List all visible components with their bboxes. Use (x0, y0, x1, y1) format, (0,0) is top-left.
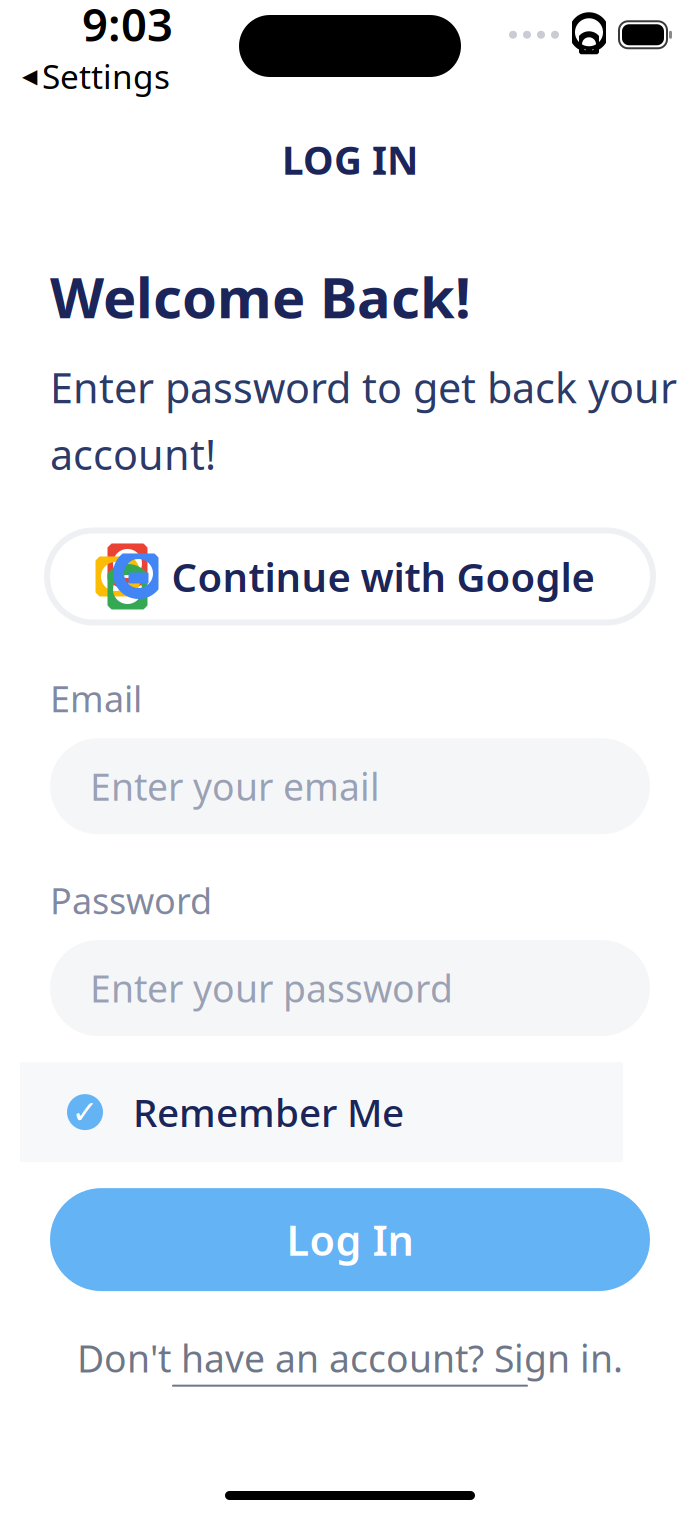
staticText: Settings (42, 54, 170, 98)
staticText: 9:03 (82, 0, 173, 54)
button[interactable]: Enter your email (50, 738, 650, 834)
button[interactable]: Don't have an account? Sign in. (77, 1333, 623, 1387)
staticText: Continue with Google (171, 550, 594, 603)
staticText: ◀ (22, 65, 37, 87)
button[interactable]: ✓ (20, 1062, 623, 1162)
button[interactable]: Log In (50, 1188, 650, 1291)
staticText: account! (50, 427, 216, 481)
staticText: Enter your password (90, 963, 453, 1013)
staticText: Log In (286, 1212, 413, 1267)
staticText: LOG IN (282, 134, 418, 185)
staticText: Enter your email (90, 761, 380, 811)
button[interactable]: Continue with Google (50, 533, 650, 619)
staticText: Welcome Back! (50, 259, 471, 334)
staticText: Email (50, 674, 142, 722)
staticText: Don't have an account? Sign in. (77, 1333, 623, 1383)
staticText: Enter password to get back your (50, 360, 677, 415)
staticText: Remember Me (133, 1086, 404, 1138)
staticText: ✓ (71, 1094, 98, 1130)
button[interactable]: Enter your password (50, 940, 650, 1036)
staticText: Password (50, 876, 212, 924)
